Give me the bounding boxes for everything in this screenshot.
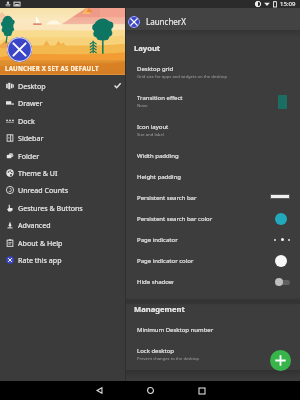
button[interactable]: Hide shadow [126, 271, 300, 292]
staticText: Persistent search bar [137, 194, 197, 202]
button[interactable]: LauncherX logo [7, 37, 32, 62]
button[interactable]: Desktop [0, 77, 125, 94]
staticText: Unread Counts [18, 185, 69, 195]
button[interactable]: Home [125, 381, 176, 400]
button[interactable]: Desktop grid [126, 58, 300, 87]
staticText: LAUNCHER X SET AS DEFAULT [5, 64, 99, 72]
staticText: Icon layout [137, 123, 169, 131]
button[interactable]: Sidebar [0, 129, 125, 146]
staticText: Advanced [18, 220, 51, 230]
button[interactable]: Folder [0, 147, 125, 164]
staticText: Hide shadow [137, 278, 174, 286]
button[interactable]: Height padding [126, 166, 300, 187]
button[interactable]: Persistent search bar color [126, 208, 300, 229]
button[interactable]: Gestures & Buttons [0, 199, 125, 216]
staticText: Height padding [137, 173, 181, 181]
staticText: LauncherX [146, 16, 186, 27]
button[interactable]: Add [270, 350, 291, 371]
button[interactable]: Page indicator [126, 229, 300, 250]
staticText: 15:09 [280, 0, 296, 8]
staticText: Layout [134, 43, 161, 53]
staticText: Width padding [137, 152, 179, 160]
staticText: Page indicator [137, 236, 178, 244]
button[interactable]: Icon layout [126, 116, 300, 145]
staticText: Sidebar [18, 133, 44, 143]
staticText: Transition effect [137, 94, 183, 102]
staticText: Persistent search bar color [137, 215, 213, 223]
staticText: Dock [18, 116, 35, 126]
button[interactable]: Lock desktop [126, 340, 300, 369]
button[interactable]: Transition effect [126, 87, 300, 116]
button[interactable]: Rate this app [0, 251, 125, 268]
staticText: About & Help [18, 238, 63, 248]
staticText: Page indicator color [137, 257, 194, 265]
button[interactable]: Back [74, 381, 125, 400]
staticText: Drawer [18, 98, 43, 108]
button[interactable]: About & Help [0, 234, 125, 251]
staticText: Gestures & Buttons [18, 203, 83, 213]
staticText: None [137, 103, 148, 109]
button[interactable]: Persistent search bar [126, 187, 300, 208]
staticText: Minimum Desktop number [137, 326, 214, 334]
staticText: Desktop [18, 81, 46, 91]
staticText: Folder [18, 151, 40, 161]
button[interactable]: Theme & UI [0, 164, 125, 181]
staticText: Management [134, 304, 185, 314]
staticText: Size and label [137, 132, 164, 138]
button[interactable]: Recents [176, 381, 227, 400]
staticText: Rate this app [18, 255, 62, 265]
button[interactable]: Advanced [0, 216, 125, 233]
button[interactable]: Dock [0, 112, 125, 129]
staticText: Lock desktop [137, 347, 175, 355]
button[interactable]: Minimum Desktop number [126, 319, 300, 340]
staticText: Prevent changes to the desktop [137, 356, 200, 362]
button[interactable]: Width padding [126, 145, 300, 166]
button[interactable]: Drawer [0, 94, 125, 111]
button[interactable]: Page indicator color [126, 250, 300, 271]
button[interactable]: Unread Counts [0, 181, 125, 198]
staticText: Theme & UI [18, 168, 58, 178]
button[interactable]: LauncherX [126, 8, 300, 30]
staticText: Grid size for apps and widgets on the de… [137, 74, 228, 80]
staticText: Desktop grid [137, 65, 174, 73]
